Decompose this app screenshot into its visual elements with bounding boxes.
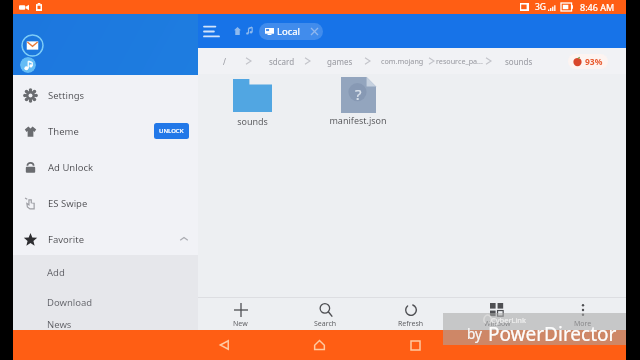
- staticText: 8:46 AM: [580, 1, 615, 13]
- button[interactable]: Add: [13, 257, 198, 287]
- staticText: ES Swipe: [48, 197, 88, 210]
- button[interactable]: Music: [243, 25, 255, 37]
- staticText: manifest.json: [329, 114, 387, 126]
- button[interactable]: Home: [231, 25, 243, 37]
- button[interactable]: ES Swipe: [13, 185, 198, 221]
- staticText: ?: [355, 84, 362, 104]
- button[interactable]: Refresh: [368, 298, 454, 330]
- button[interactable]: Download: [13, 287, 198, 317]
- button[interactable]: com.mojang: [375, 48, 430, 74]
- staticText: New: [233, 319, 248, 329]
- staticText: games: [327, 56, 353, 67]
- button[interactable]: Window: [454, 298, 540, 330]
- staticText: Favorite: [48, 233, 84, 246]
- staticText: UNLOCK: [159, 127, 184, 135]
- staticText: com.mojang: [381, 56, 424, 66]
- button[interactable]: sdcard: [263, 48, 301, 74]
- button[interactable]: Local: [259, 23, 323, 40]
- button[interactable]: More: [540, 298, 626, 330]
- button[interactable]: Settings: [13, 77, 198, 113]
- button[interactable]: Menu: [201, 21, 221, 41]
- staticText: /: [223, 56, 226, 67]
- staticText: Refresh: [398, 319, 424, 329]
- button[interactable]: Music: [20, 57, 36, 73]
- staticText: sounds: [237, 115, 268, 127]
- button[interactable]: sounds: [499, 48, 539, 74]
- button[interactable]: News: [13, 317, 198, 330]
- button[interactable]: New: [198, 298, 283, 330]
- staticText: 3G: [535, 1, 547, 13]
- staticText: by: [467, 325, 482, 343]
- staticText: Add: [47, 266, 65, 279]
- button[interactable]: Recents: [402, 332, 428, 358]
- staticText: Window: [484, 319, 511, 329]
- staticText: Local: [277, 25, 301, 38]
- button[interactable]: sounds: [213, 77, 291, 127]
- button[interactable]: Theme: [13, 113, 198, 149]
- button[interactable]: ?: [319, 77, 397, 126]
- button[interactable]: games: [321, 48, 359, 74]
- staticText: 93%: [585, 56, 603, 68]
- staticText: More: [574, 319, 592, 329]
- button[interactable]: Mail: [21, 34, 44, 57]
- staticText: sdcard: [269, 56, 295, 67]
- button[interactable]: resource_pa...: [430, 48, 489, 74]
- staticText: Settings: [48, 89, 85, 102]
- staticText: Ad Unlock: [48, 161, 94, 174]
- staticText: News: [47, 318, 72, 330]
- button[interactable]: Search: [283, 298, 368, 330]
- button[interactable]: /: [217, 48, 232, 74]
- staticText: CyberLink: [491, 315, 527, 325]
- button[interactable]: Home: [306, 332, 332, 358]
- staticText: Theme: [48, 125, 79, 138]
- staticText: sounds: [505, 56, 533, 67]
- staticText: Search: [314, 319, 337, 329]
- staticText: Download: [47, 296, 93, 309]
- button[interactable]: Favorite: [13, 221, 198, 257]
- button[interactable]: Ad Unlock: [13, 149, 198, 185]
- staticText: PowerDirector: [488, 321, 617, 347]
- button[interactable]: 93%: [568, 54, 608, 69]
- button[interactable]: Back: [211, 332, 237, 358]
- staticText: resource_pa...: [436, 56, 483, 66]
